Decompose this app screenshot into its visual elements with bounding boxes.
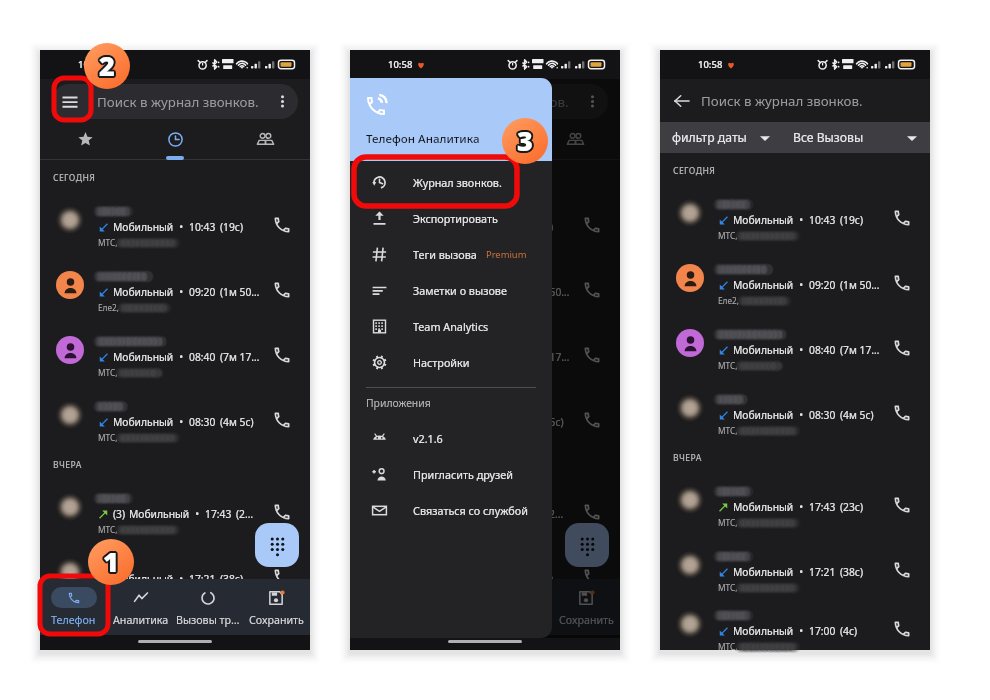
button[interactable]: Call — [887, 268, 917, 298]
button[interactable]: Связаться со службой — [350, 492, 552, 528]
button[interactable]: Call — [577, 562, 607, 592]
button[interactable]: Мобильный — [350, 187, 620, 252]
button[interactable]: Мобильный — [660, 375, 930, 440]
button[interactable]: Call — [267, 210, 297, 240]
button[interactable]: Call — [887, 203, 917, 233]
staticText: 1 — [102, 541, 118, 578]
button[interactable]: Call — [887, 614, 917, 644]
button[interactable]: Call — [577, 340, 607, 370]
button[interactable]: Мобильный — [350, 252, 620, 317]
staticText: (3) — [113, 507, 126, 521]
staticText: 1 — [102, 542, 118, 579]
staticText: 2 — [99, 47, 115, 84]
button[interactable]: фильтр даты — [660, 122, 782, 153]
button[interactable]: (3) — [40, 474, 310, 539]
button[interactable]: Contacts — [220, 123, 310, 156]
button[interactable]: Back — [674, 90, 696, 112]
button[interactable]: Dialpad — [255, 523, 299, 567]
button[interactable]: Favourites — [350, 123, 440, 156]
button[interactable]: Favourites — [40, 123, 130, 156]
staticText: 1 — [101, 542, 117, 579]
button[interactable]: Call — [887, 333, 917, 363]
button[interactable]: Мобильный — [660, 597, 930, 650]
button[interactable]: Мобильный — [40, 539, 310, 604]
staticText: • — [174, 572, 189, 586]
staticText: 10:43 — [189, 220, 216, 234]
staticText: 08:40 — [189, 350, 216, 364]
button[interactable]: Call — [267, 275, 297, 305]
staticText: • — [794, 565, 809, 579]
button[interactable]: Contacts — [530, 123, 620, 156]
button[interactable]: Мобильный — [660, 245, 930, 310]
staticText: Настройки — [413, 355, 470, 370]
button[interactable]: Call — [887, 555, 917, 585]
staticText: 08:30 — [189, 415, 216, 429]
staticText: 2 — [101, 46, 117, 83]
button[interactable]: Мобильный — [40, 382, 310, 447]
staticText: 2 — [97, 48, 113, 85]
button[interactable]: Настройки — [350, 344, 552, 380]
button[interactable]: (3) — [350, 474, 620, 539]
button[interactable]: Мобильный — [660, 467, 930, 532]
staticText: 3 — [518, 120, 534, 157]
button[interactable]: Call — [267, 562, 297, 592]
button[interactable]: Мобильный — [350, 539, 620, 604]
button[interactable]: Заметки о вызове — [350, 272, 552, 308]
button[interactable]: Журнал звонков. — [350, 164, 552, 200]
button[interactable]: Recents — [130, 123, 220, 156]
button[interactable]: Call — [267, 340, 297, 370]
button[interactable]: Menu — [362, 84, 398, 119]
button[interactable]: Сохранить — [242, 579, 310, 635]
staticText: СЕГОДНЯ — [673, 165, 716, 177]
staticText: 10:43 — [809, 213, 836, 227]
staticText: Журнал звонков. — [413, 175, 502, 190]
staticText: (7м 17… — [840, 343, 880, 357]
staticText: Вызовы тр… — [176, 613, 240, 628]
button[interactable]: Мобильный — [660, 310, 930, 375]
button[interactable]: Мобильный — [40, 187, 310, 252]
button[interactable]: Мобильный — [350, 317, 620, 382]
staticText: Мобильный — [113, 572, 174, 586]
staticText: (23с) — [840, 500, 864, 514]
button[interactable]: Call — [577, 275, 607, 305]
button[interactable]: Все Вызовы — [782, 122, 930, 153]
staticText: 10:58 — [388, 58, 413, 71]
button[interactable]: Call — [577, 497, 607, 527]
staticText: 2 — [99, 49, 115, 86]
button[interactable]: Теги вызова — [350, 236, 552, 272]
button[interactable]: v2.1.6 — [350, 420, 552, 456]
button[interactable]: Экспортировать — [350, 200, 552, 236]
staticText: 17:43 — [515, 507, 542, 521]
button[interactable]: Call — [267, 497, 297, 527]
button[interactable]: Телефон — [40, 579, 107, 635]
button[interactable]: Call — [267, 405, 297, 435]
button[interactable]: Call — [887, 398, 917, 428]
button[interactable]: Мобильный — [660, 180, 930, 245]
button[interactable]: Call — [577, 210, 607, 240]
button[interactable]: Мобильный — [40, 252, 310, 317]
button[interactable]: Call — [887, 490, 917, 520]
staticText: (7м 17… — [530, 350, 570, 364]
staticText: 1 — [104, 543, 120, 580]
button[interactable]: Recents — [440, 123, 530, 156]
button[interactable]: Мобильный — [40, 317, 310, 382]
button[interactable]: Вызовы тр… — [174, 579, 242, 635]
button[interactable]: Сохранить — [552, 579, 620, 635]
button[interactable]: Team Analytics — [350, 308, 552, 344]
button[interactable]: Call — [577, 405, 607, 435]
button[interactable]: Мобильный — [350, 382, 620, 447]
button[interactable]: Аналитика — [107, 579, 174, 635]
button[interactable]: More options — [267, 86, 298, 117]
staticText: 1 — [103, 545, 119, 582]
button[interactable]: Мобильный — [660, 532, 930, 597]
button[interactable]: Menu — [52, 84, 88, 119]
staticText: 1 — [105, 543, 121, 580]
staticText: • — [174, 350, 189, 364]
button[interactable]: More options — [577, 86, 608, 117]
button[interactable]: Пригласить друзей — [350, 456, 552, 492]
